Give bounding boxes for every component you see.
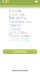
staticText: Country [9,27,20,31]
staticText: Jordan Reyes [9,13,26,16]
staticText: jordan@mail.com [9,20,31,24]
staticText: 9:41 [2,0,9,3]
staticText: Phone number [9,34,31,38]
staticText: Password [9,24,21,27]
button[interactable]: Continue [0,49,40,54]
staticText: +1 555 0134 [9,38,29,42]
staticText: United States [9,31,27,34]
staticText: Full name [9,9,22,13]
staticText: Email address [9,16,26,20]
staticText: Continue [13,50,27,53]
